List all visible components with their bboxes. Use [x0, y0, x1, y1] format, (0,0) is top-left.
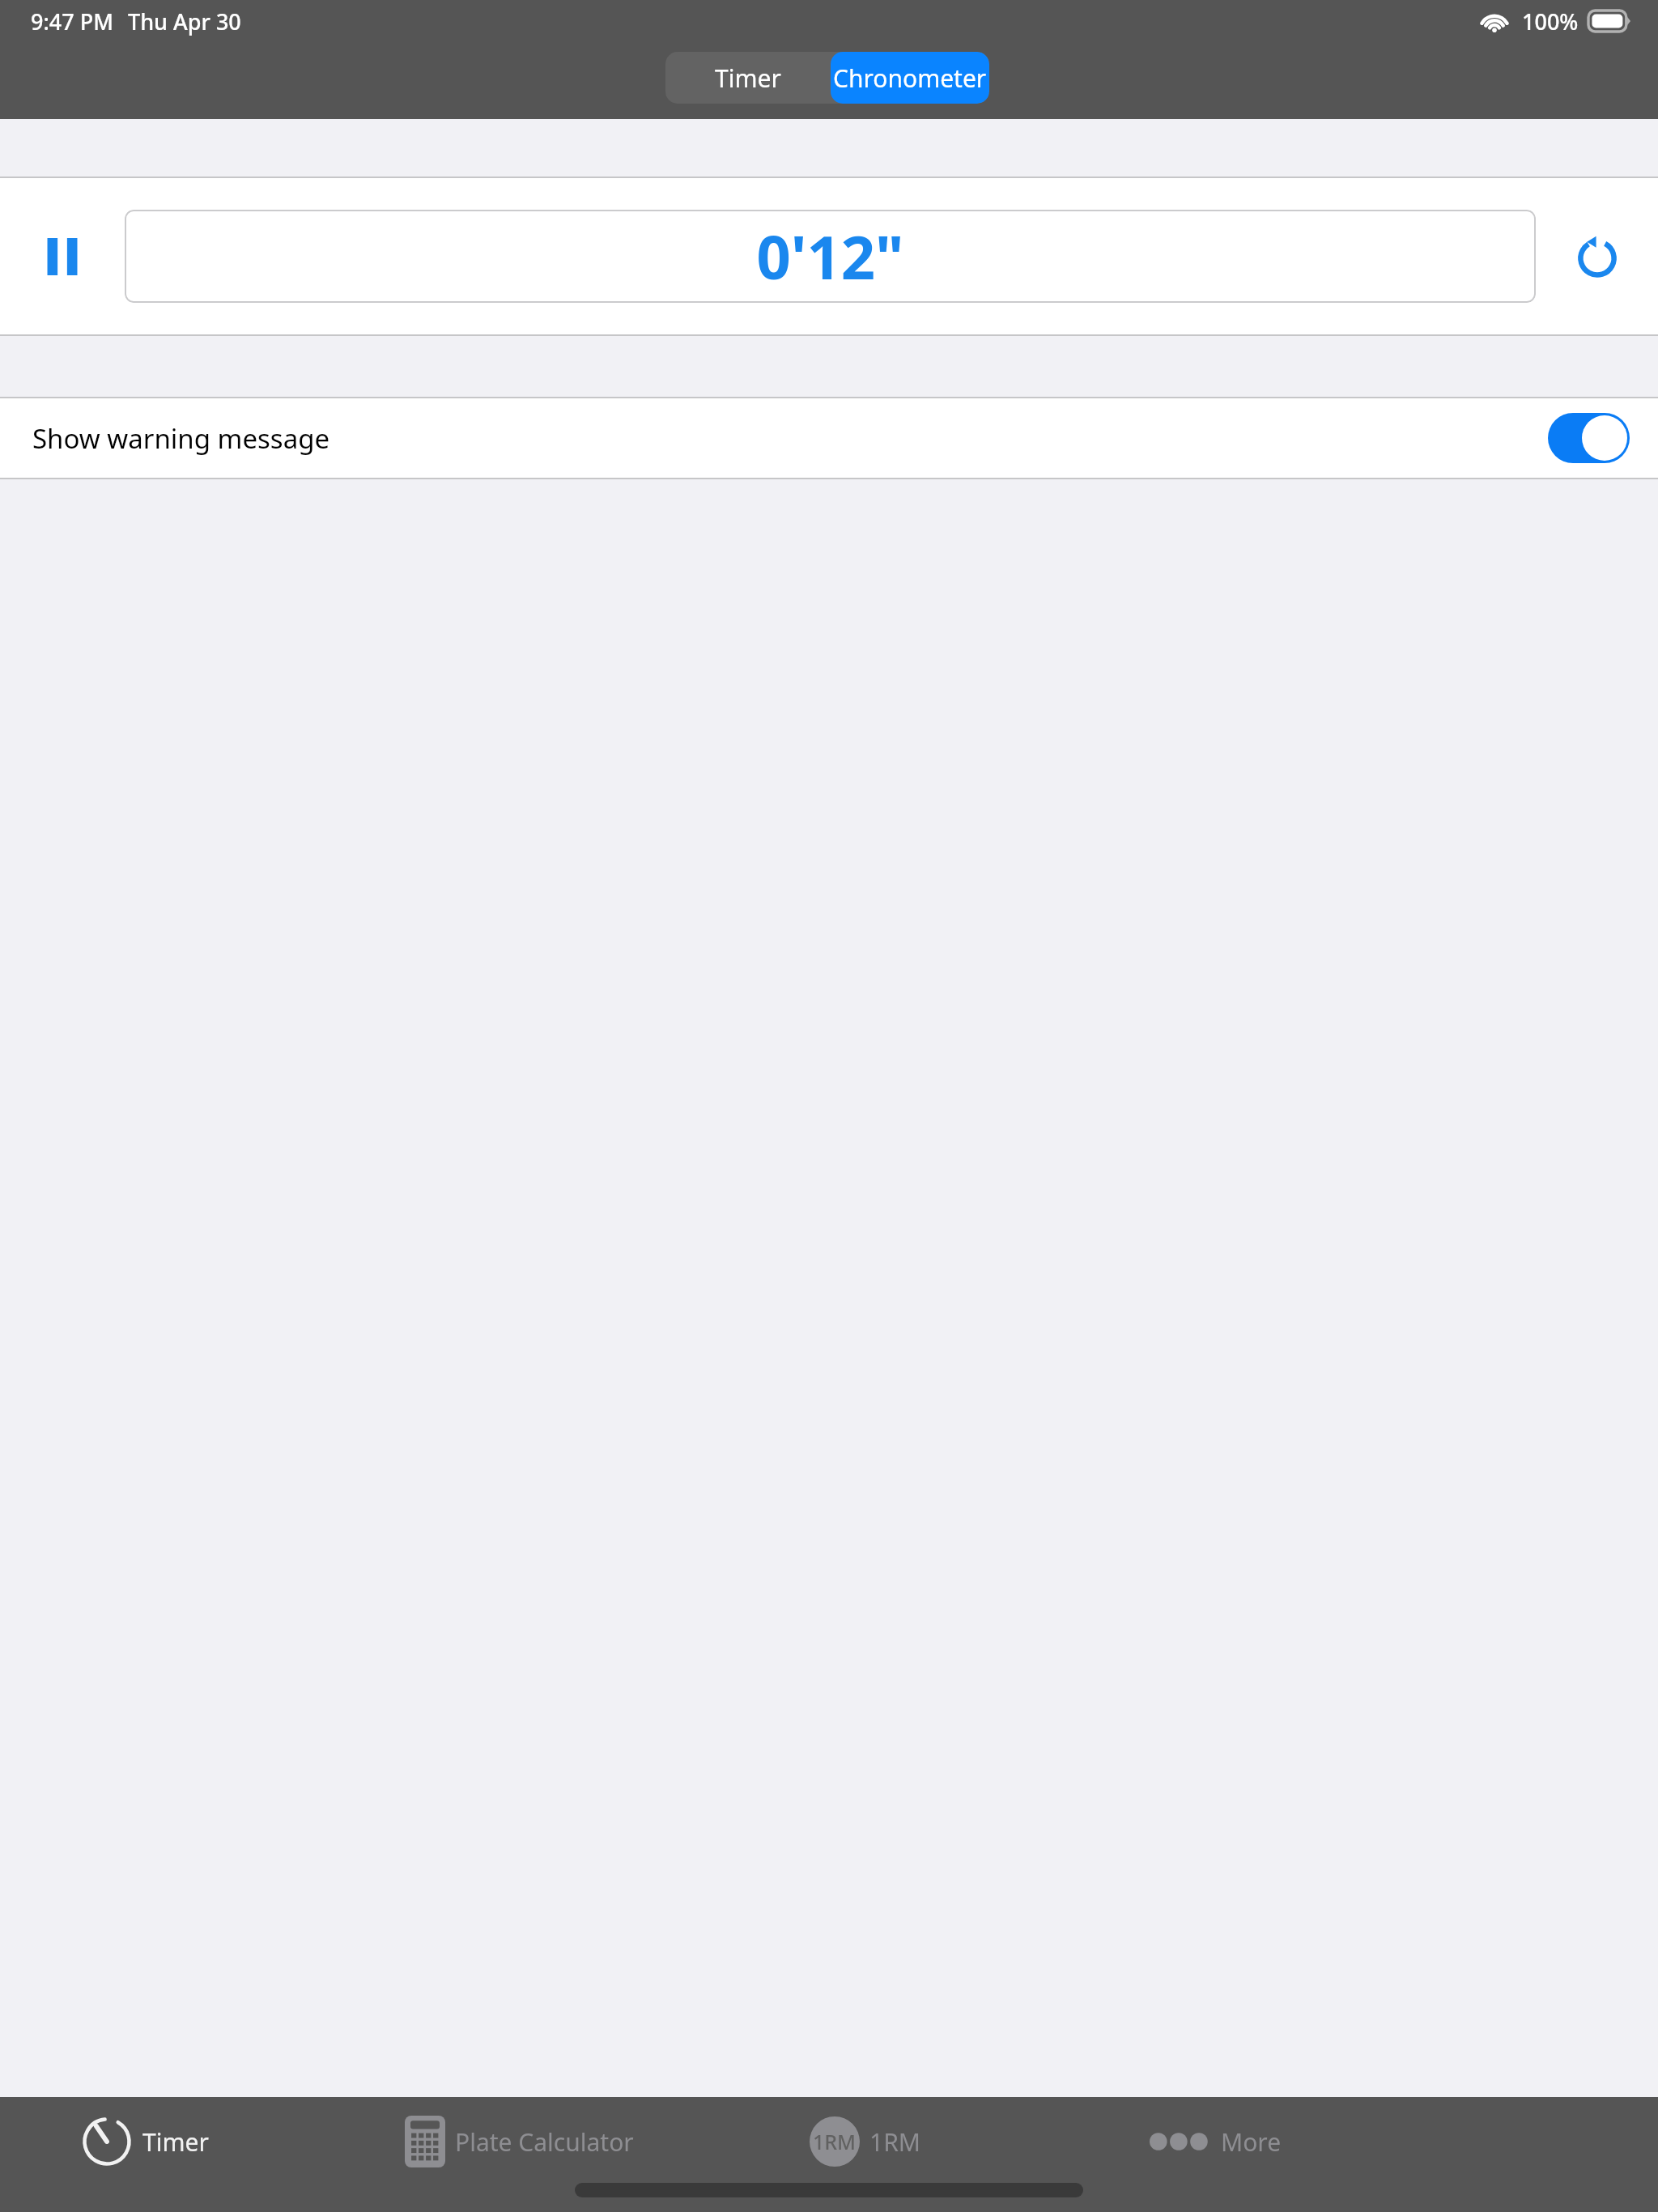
staticText: Thu Apr 30: [128, 6, 241, 36]
button[interactable]: Pause: [0, 178, 125, 334]
button[interactable]: Timer: [81, 2097, 405, 2186]
button[interactable]: Show warning message toggle: [1548, 413, 1630, 463]
staticText: Plate Calculator: [455, 2125, 634, 2159]
button[interactable]: More: [1150, 2097, 1473, 2186]
button[interactable]: Reset: [1536, 178, 1658, 334]
button[interactable]: Plate Calculator: [405, 2097, 810, 2186]
staticText: Chronometer: [833, 62, 987, 95]
button[interactable]: Timer: [665, 52, 831, 104]
staticText: Show warning message: [32, 420, 330, 457]
staticText: 1RM: [869, 2125, 921, 2159]
staticText: 100%: [1522, 6, 1579, 36]
staticText: 1RM: [813, 2128, 857, 2155]
staticText: More: [1221, 2125, 1282, 2159]
staticText: 9:47 PM: [31, 6, 113, 36]
button[interactable]: 0'12": [125, 210, 1536, 303]
staticText: Timer: [715, 62, 781, 95]
button[interactable]: Chronometer: [831, 52, 989, 104]
button[interactable]: Show warning message: [0, 398, 1658, 478]
staticText: 0'12": [756, 215, 904, 297]
button[interactable]: 1RM: [810, 2097, 1150, 2186]
staticText: Timer: [142, 2125, 209, 2159]
